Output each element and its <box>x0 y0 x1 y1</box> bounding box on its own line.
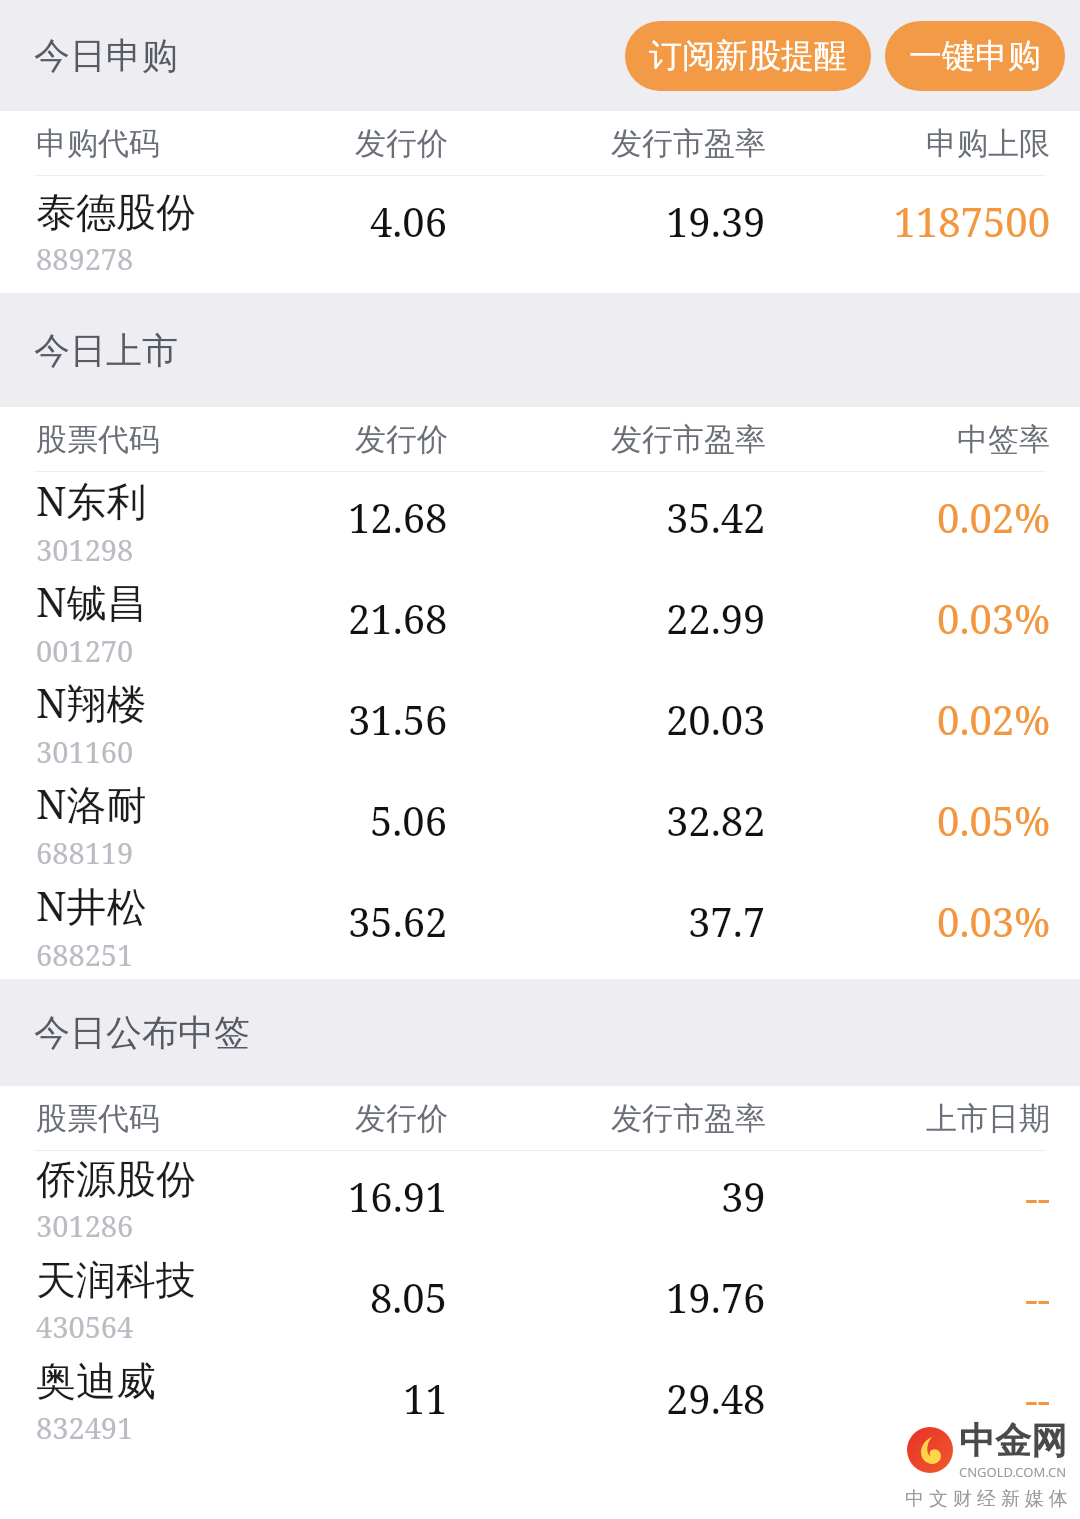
staticText: N洛耐 <box>36 776 147 831</box>
staticText: 19.76 <box>666 1270 766 1324</box>
staticText: 001270 <box>36 631 134 670</box>
staticText: 0.02% <box>937 490 1050 544</box>
staticText: 20.03 <box>666 692 766 746</box>
staticText: 35.42 <box>666 490 766 544</box>
staticText: -- <box>1025 1371 1050 1425</box>
staticText: -- <box>1025 1270 1050 1324</box>
staticText: 侨源股份 <box>36 1154 196 1204</box>
button[interactable]: N翔楼 <box>0 674 1080 775</box>
staticText: 430564 <box>36 1307 134 1346</box>
staticText: 发行市盈率 <box>611 1099 766 1138</box>
staticText: 8.05 <box>370 1270 448 1324</box>
button[interactable]: 天润科技 <box>0 1252 1080 1353</box>
staticText: 0.02% <box>937 692 1050 746</box>
staticText: 中签率 <box>957 420 1050 459</box>
staticText: 16.91 <box>348 1169 448 1223</box>
staticText: 1187500 <box>893 194 1050 248</box>
staticText: 股票代码 <box>36 420 160 459</box>
staticText: 19.39 <box>666 194 766 248</box>
button[interactable]: N洛耐 <box>0 775 1080 876</box>
staticText: 今日上市 <box>34 328 178 373</box>
staticText: N井松 <box>36 878 147 933</box>
staticText: 发行价 <box>355 420 448 459</box>
staticText: 889278 <box>36 239 134 278</box>
staticText: 申购代码 <box>36 124 160 163</box>
staticText: 发行价 <box>355 124 448 163</box>
staticText: 31.56 <box>348 692 448 746</box>
staticText: 12.68 <box>348 490 448 544</box>
staticText: -- <box>1025 1169 1050 1223</box>
staticText: N铖昌 <box>36 574 147 629</box>
staticText: 22.99 <box>666 591 766 645</box>
staticText: 688251 <box>36 935 134 974</box>
staticText: 32.82 <box>666 793 766 847</box>
staticText: 中金网 <box>959 1418 1067 1463</box>
staticText: 688119 <box>36 833 134 872</box>
staticText: 发行市盈率 <box>611 420 766 459</box>
staticText: 4.06 <box>370 194 448 248</box>
button[interactable]: 奥迪威 <box>0 1353 1080 1454</box>
staticText: 301160 <box>36 732 134 771</box>
staticText: 11 <box>403 1371 448 1425</box>
button[interactable]: N铖昌 <box>0 573 1080 674</box>
button[interactable]: N井松 <box>0 876 1080 979</box>
staticText: 一键申购 <box>909 35 1041 77</box>
staticText: 今日申购 <box>34 33 178 78</box>
button[interactable]: 泰德股份 <box>0 176 1080 293</box>
button[interactable]: 侨源股份 <box>0 1151 1080 1252</box>
staticText: 301286 <box>36 1206 134 1245</box>
staticText: 35.62 <box>348 894 448 948</box>
staticText: 发行价 <box>355 1099 448 1138</box>
staticText: 0.05% <box>937 793 1050 847</box>
button[interactable]: N东利 <box>0 472 1080 573</box>
staticText: 泰德股份 <box>36 187 196 237</box>
staticText: 29.48 <box>666 1371 766 1425</box>
staticText: 订阅新股提醒 <box>649 35 847 77</box>
staticText: 股票代码 <box>36 1099 160 1138</box>
staticText: 发行市盈率 <box>611 124 766 163</box>
staticText: 0.03% <box>937 591 1050 645</box>
staticText: 37.7 <box>688 894 766 948</box>
staticText: 今日公布中签 <box>34 1010 250 1055</box>
staticText: 0.03% <box>937 894 1050 948</box>
button[interactable]: 一键申购 <box>885 21 1065 91</box>
staticText: 申购上限 <box>926 124 1050 163</box>
staticText: 832491 <box>36 1408 134 1447</box>
staticText: 5.06 <box>370 793 448 847</box>
staticText: 21.68 <box>348 591 448 645</box>
staticText: 奥迪威 <box>36 1356 156 1406</box>
staticText: 天润科技 <box>36 1255 196 1305</box>
staticText: CNGOLD.COM.CN <box>959 1463 1067 1481</box>
staticText: 39 <box>721 1169 766 1223</box>
button[interactable]: 订阅新股提醒 <box>625 21 871 91</box>
staticText: 301298 <box>36 530 134 569</box>
staticText: 中 文 财 经 新 媒 体 <box>905 1485 1068 1511</box>
staticText: N东利 <box>36 473 147 528</box>
staticText: 上市日期 <box>926 1099 1050 1138</box>
staticText: N翔楼 <box>36 675 147 730</box>
